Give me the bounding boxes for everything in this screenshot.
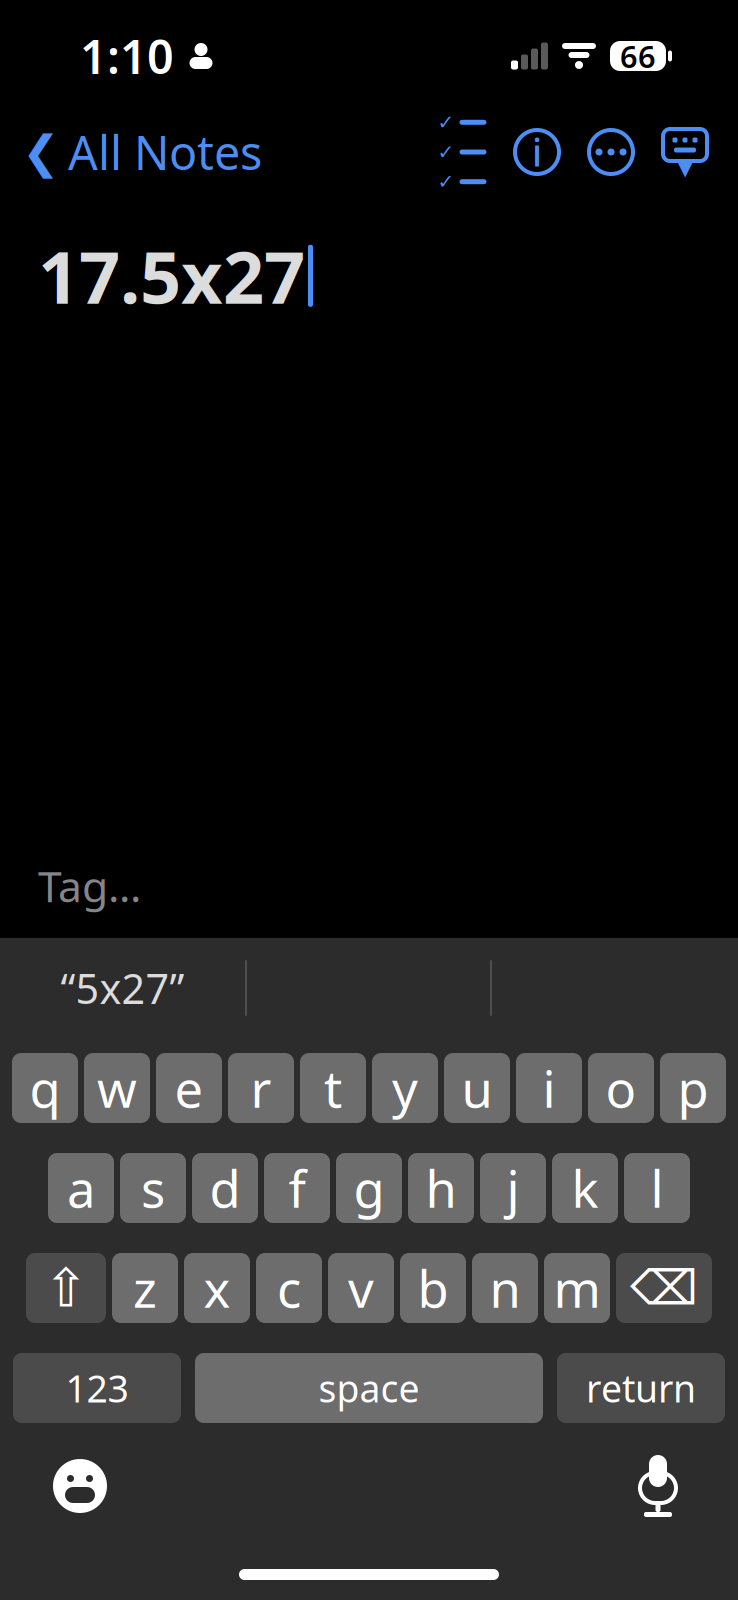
- staticText: m: [553, 1254, 600, 1322]
- staticText: u: [461, 1054, 492, 1122]
- button[interactable]: More: [574, 115, 648, 189]
- button[interactable]: x: [184, 1253, 250, 1323]
- staticText: t: [324, 1054, 342, 1122]
- button[interactable]: l: [624, 1153, 690, 1223]
- button[interactable]: w: [84, 1053, 150, 1123]
- staticText: 66: [620, 36, 656, 76]
- button[interactable]: b: [400, 1253, 466, 1323]
- staticText: o: [605, 1054, 636, 1122]
- button[interactable]: r: [228, 1053, 294, 1123]
- staticText: j: [506, 1154, 519, 1222]
- staticText: g: [353, 1154, 384, 1222]
- staticText: d: [209, 1154, 240, 1222]
- staticText: 1:10: [80, 25, 174, 87]
- staticText: ⇧: [43, 1258, 88, 1318]
- staticText: ⌫: [630, 1261, 698, 1315]
- button[interactable]: v: [328, 1253, 394, 1323]
- staticText: q: [29, 1054, 60, 1122]
- button[interactable]: g: [336, 1153, 402, 1223]
- button[interactable]: z: [112, 1253, 178, 1323]
- staticText: k: [571, 1154, 598, 1222]
- button[interactable]: f: [264, 1153, 330, 1223]
- button[interactable]: space: [195, 1353, 543, 1423]
- button[interactable]: i: [516, 1053, 582, 1123]
- staticText: All Notes: [68, 121, 262, 183]
- button[interactable]: n: [472, 1253, 538, 1323]
- staticText: ▼: [677, 157, 692, 179]
- staticText: c: [277, 1254, 301, 1322]
- button[interactable]: j: [480, 1153, 546, 1223]
- button[interactable]: q: [12, 1053, 78, 1123]
- button[interactable]: d: [192, 1153, 258, 1223]
- staticText: l: [650, 1154, 663, 1222]
- staticText: p: [677, 1054, 708, 1122]
- staticText: v: [348, 1254, 374, 1322]
- button[interactable]: Hide Keyboard: [648, 115, 722, 189]
- button[interactable]: Information: [500, 115, 574, 189]
- staticText: ✓: [437, 141, 454, 163]
- button[interactable]: u: [444, 1053, 510, 1123]
- staticText: 17.5x27: [38, 228, 305, 324]
- button[interactable]: return: [557, 1353, 725, 1423]
- button[interactable]: Delete: [616, 1253, 712, 1323]
- staticText: s: [141, 1154, 165, 1222]
- staticText: x: [203, 1254, 230, 1322]
- staticText: b: [417, 1254, 448, 1322]
- staticText: space: [318, 1363, 419, 1413]
- button[interactable]: m: [544, 1253, 610, 1323]
- button[interactable]: e: [156, 1053, 222, 1123]
- button[interactable]: y: [372, 1053, 438, 1123]
- staticText: “5x27”: [60, 961, 184, 1015]
- staticText: return: [586, 1363, 696, 1413]
- button[interactable]: o: [588, 1053, 654, 1123]
- staticText: ✓: [437, 111, 454, 134]
- staticText: r: [250, 1054, 271, 1122]
- button[interactable]: a: [48, 1153, 114, 1223]
- staticText: ✓: [437, 170, 454, 193]
- button[interactable]: Shift: [26, 1253, 106, 1323]
- button[interactable]: 123: [13, 1353, 181, 1423]
- button[interactable]: c: [256, 1253, 322, 1323]
- button[interactable]: t: [300, 1053, 366, 1123]
- button[interactable]: Dictation: [608, 1438, 708, 1534]
- staticText: 123: [65, 1363, 128, 1413]
- staticText: i: [532, 127, 542, 177]
- staticText: y: [392, 1054, 418, 1122]
- staticText: ❮: [22, 126, 60, 178]
- button[interactable]: “5x27”: [0, 938, 245, 1038]
- staticText: a: [67, 1154, 95, 1222]
- staticText: f: [288, 1154, 305, 1222]
- staticText: e: [174, 1054, 203, 1122]
- staticText: n: [489, 1254, 520, 1322]
- button[interactable]: h: [408, 1153, 474, 1223]
- staticText: z: [133, 1254, 157, 1322]
- staticText: h: [425, 1154, 456, 1222]
- button[interactable]: p: [660, 1053, 726, 1123]
- button[interactable]: ❮: [4, 115, 280, 189]
- button[interactable]: s: [120, 1153, 186, 1223]
- staticText: Tag...: [38, 857, 141, 914]
- staticText: i: [542, 1054, 555, 1122]
- button[interactable]: Checklist: [426, 115, 500, 189]
- staticText: w: [97, 1054, 137, 1122]
- button[interactable]: k: [552, 1153, 618, 1223]
- button[interactable]: Emoji: [30, 1438, 130, 1534]
